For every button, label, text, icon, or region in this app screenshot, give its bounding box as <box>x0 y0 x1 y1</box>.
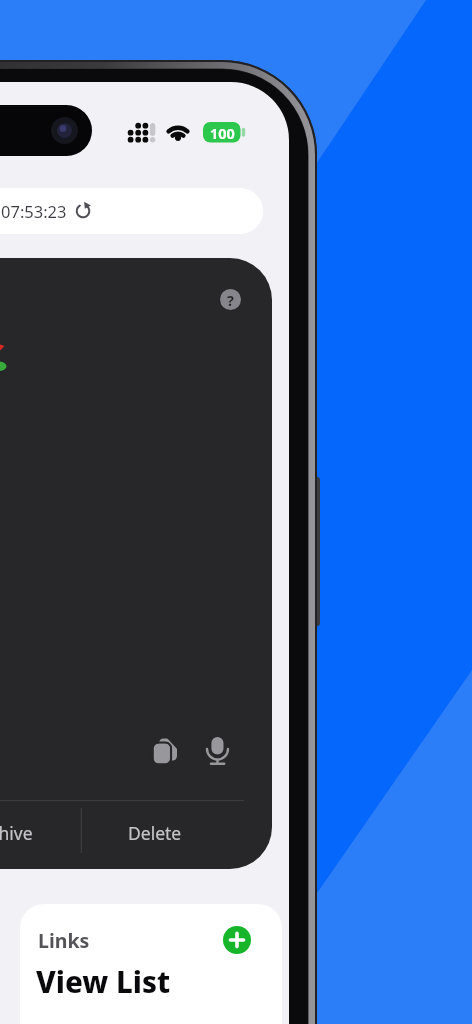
staticText: 07:53:23 <box>1 200 67 222</box>
button[interactable]: Delete <box>81 801 272 869</box>
button[interactable]: Archive <box>0 801 81 869</box>
staticText: ? <box>227 290 234 310</box>
button[interactable] <box>148 731 182 769</box>
staticText: Delete <box>128 821 182 845</box>
button[interactable]: 07:53:23 <box>0 188 263 234</box>
staticText: Archive <box>0 821 33 845</box>
staticText: Links <box>38 927 90 954</box>
staticText: View List <box>36 961 171 1001</box>
button[interactable]: Links <box>20 904 282 1024</box>
button[interactable] <box>203 731 231 769</box>
button[interactable]: ? <box>220 289 241 310</box>
staticText: 100 <box>210 123 235 143</box>
button[interactable] <box>223 926 251 954</box>
